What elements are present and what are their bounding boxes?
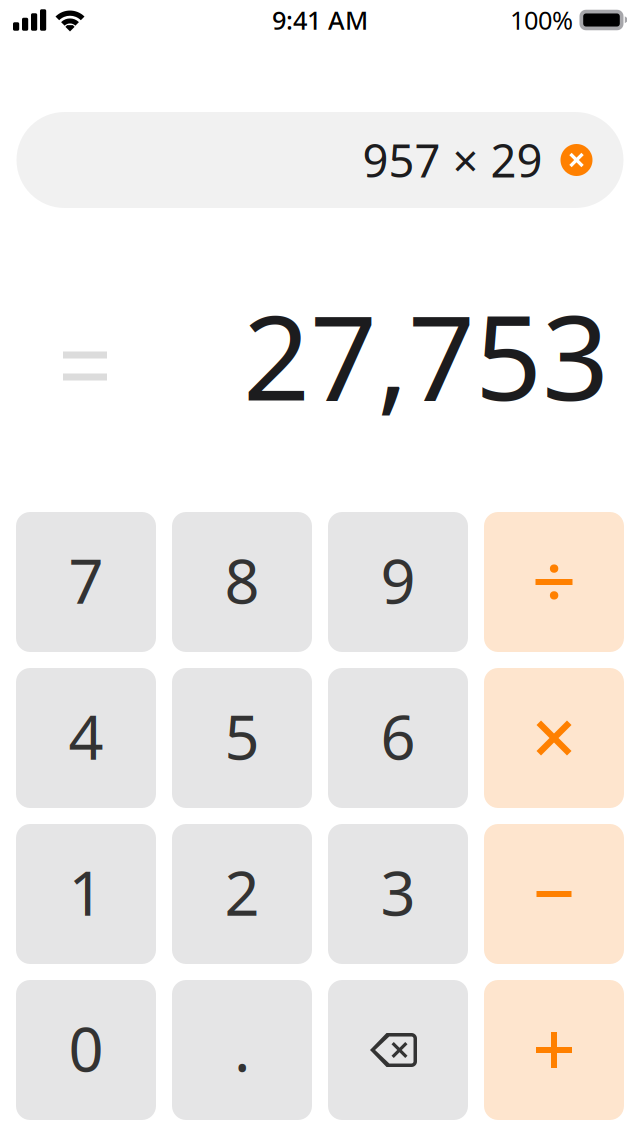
button[interactable]: 6 [328,668,468,808]
staticText: 5 [224,695,259,777]
staticText: 8 [224,539,259,621]
staticText: 4 [68,695,103,777]
button[interactable]: Multiply [484,668,624,808]
button[interactable]: Clear [560,144,592,176]
button[interactable]: Add [484,980,624,1120]
button[interactable]: 3 [328,824,468,964]
staticText: 3 [380,851,415,933]
staticText: 27,753 [243,277,609,433]
staticText: 2 [224,851,259,933]
staticText: . [234,1007,250,1089]
button[interactable]: . [172,980,312,1120]
staticText: 7 [68,539,103,621]
button[interactable]: 1 [16,824,156,964]
button[interactable]: 7 [16,512,156,652]
staticText: 957 × 29 [362,130,542,190]
button[interactable]: Subtract [484,824,624,964]
button[interactable]: 0 [16,980,156,1120]
button[interactable]: Divide [484,512,624,652]
staticText: 9:41 AM [272,3,368,37]
staticText: 9 [380,539,415,621]
button[interactable]: 9 [328,512,468,652]
button[interactable]: 5 [172,668,312,808]
button[interactable]: 2 [172,824,312,964]
button[interactable]: 8 [172,512,312,652]
staticText: 1 [68,851,103,933]
staticText: 0 [68,1007,103,1089]
button[interactable]: Delete [328,980,468,1120]
button[interactable]: 4 [16,668,156,808]
staticText: 100% [510,3,573,37]
staticText: 6 [380,695,415,777]
